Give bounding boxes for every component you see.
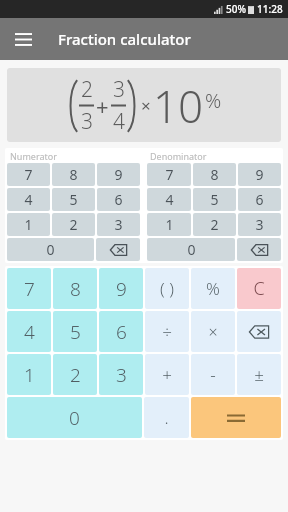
staticText: 4	[24, 319, 35, 345]
button[interactable]: 1	[147, 213, 191, 236]
staticText: %	[205, 87, 222, 114]
staticText: 5	[69, 190, 78, 209]
button[interactable]: -	[191, 354, 235, 395]
button[interactable]: ±	[237, 354, 281, 395]
staticText: ×	[141, 94, 151, 117]
staticText: 1	[24, 362, 35, 388]
button[interactable]: +	[145, 354, 189, 395]
staticText: ×	[208, 321, 218, 343]
button[interactable]: 0	[147, 238, 235, 261]
button[interactable]: 5	[193, 188, 236, 211]
staticText: 2	[69, 215, 78, 234]
button[interactable]: 9	[97, 163, 140, 186]
staticText: C	[253, 276, 265, 301]
button[interactable]: 0	[7, 238, 94, 261]
staticText: Denominator	[150, 150, 207, 162]
staticText: 11:28	[257, 2, 283, 16]
button[interactable]: 6	[238, 188, 281, 211]
staticText: 3	[255, 215, 264, 234]
staticText: 0	[187, 240, 196, 259]
button[interactable]: 9	[238, 163, 281, 186]
staticText: 7	[24, 276, 35, 302]
staticText: 9	[255, 165, 264, 184]
button[interactable]: 8	[53, 268, 97, 309]
staticText: 9	[116, 276, 127, 302]
button[interactable]: 4	[7, 311, 51, 352]
staticText: ±	[254, 363, 264, 386]
staticText: 0	[69, 405, 80, 431]
staticText: 4	[24, 190, 33, 209]
staticText: 9	[114, 165, 123, 184]
staticText: 6	[255, 190, 264, 209]
button[interactable]: 2	[193, 213, 236, 236]
button[interactable]: 9	[99, 268, 143, 309]
staticText: 8	[210, 165, 219, 184]
staticText: 10	[153, 76, 204, 136]
button[interactable]: Open navigation menu	[8, 24, 38, 54]
staticText: 8	[69, 165, 78, 184]
staticText: +	[162, 363, 172, 386]
button[interactable]: 2	[53, 354, 97, 395]
staticText: 4	[165, 190, 174, 209]
button[interactable]: 3	[238, 213, 281, 236]
staticText: 8	[70, 276, 81, 302]
staticText: -	[210, 363, 216, 386]
button[interactable]: 2	[52, 213, 95, 236]
staticText: .	[164, 406, 169, 429]
button[interactable]: .	[144, 397, 189, 438]
button[interactable]: %	[191, 268, 235, 309]
staticText: 0	[46, 240, 55, 259]
staticText: 3	[113, 75, 125, 104]
button[interactable]: C	[237, 268, 281, 309]
staticText: 2	[81, 75, 93, 104]
button[interactable]: 5	[53, 311, 97, 352]
staticText: ÷	[162, 320, 172, 343]
button[interactable]: 7	[7, 163, 50, 186]
staticText: 5	[210, 190, 219, 209]
staticText: 3	[81, 107, 93, 136]
staticText: 6	[114, 190, 123, 209]
button[interactable]: 1	[7, 354, 51, 395]
button[interactable]: 8	[193, 163, 236, 186]
button[interactable]: 4	[147, 188, 191, 211]
button[interactable]: Backspace	[237, 311, 281, 352]
staticText: 3	[116, 362, 127, 388]
staticText: 4	[113, 107, 125, 136]
button[interactable]: ×	[191, 311, 235, 352]
button[interactable]: 7	[7, 268, 51, 309]
staticText: 6	[116, 319, 127, 345]
staticText: 3	[114, 215, 123, 234]
button[interactable]: ÷	[145, 311, 189, 352]
staticText: ( )	[160, 277, 174, 300]
button[interactable]: 7	[147, 163, 191, 186]
staticText: Numerator	[10, 150, 57, 162]
button[interactable]: 6	[99, 311, 143, 352]
staticText: 2	[210, 215, 219, 234]
button[interactable]: 3	[97, 213, 140, 236]
staticText: 7	[165, 165, 174, 184]
staticText: 2	[70, 362, 81, 388]
staticText: %	[206, 277, 220, 300]
button[interactable]: 3	[99, 354, 143, 395]
button[interactable]: 8	[52, 163, 95, 186]
button[interactable]	[191, 397, 281, 438]
button[interactable]: 0	[7, 397, 142, 438]
button[interactable]: Backspace	[96, 238, 140, 261]
button[interactable]: ( )	[145, 268, 189, 309]
button[interactable]: 6	[97, 188, 140, 211]
staticText: Fraction calculator	[58, 29, 191, 49]
staticText: 1	[24, 215, 33, 234]
button[interactable]: 5	[52, 188, 95, 211]
staticText: 1	[165, 215, 174, 234]
button[interactable]: 4	[7, 188, 50, 211]
button[interactable]: Backspace	[237, 238, 281, 261]
staticText: 7	[24, 165, 33, 184]
staticText: 50%	[226, 2, 246, 16]
staticText: 5	[70, 319, 81, 345]
staticText: +	[96, 91, 109, 121]
button[interactable]: 1	[7, 213, 50, 236]
